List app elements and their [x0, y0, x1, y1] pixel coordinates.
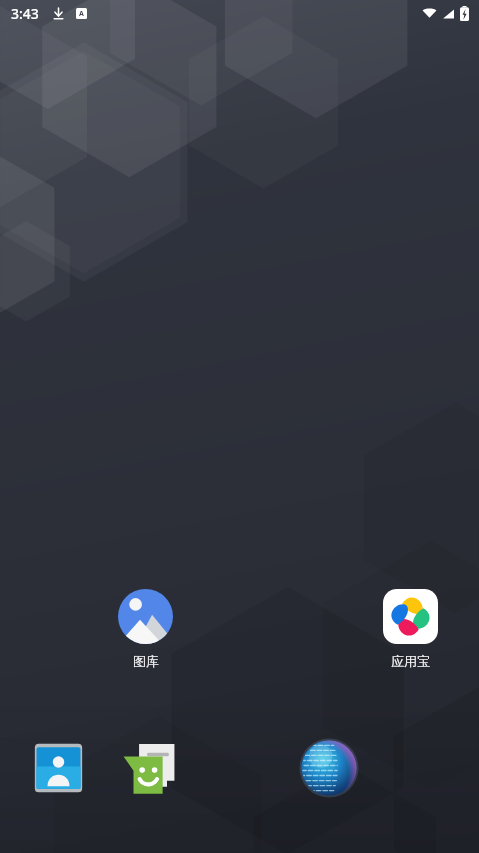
- button[interactable]: 应用宝: [379, 587, 442, 671]
- staticText: 3:43: [11, 4, 39, 23]
- button[interactable]: 图库: [114, 587, 177, 671]
- staticText: 应用宝: [391, 653, 430, 669]
- button[interactable]: Contacts: [31, 740, 86, 795]
- button[interactable]: Browser: [299, 738, 359, 798]
- staticText: 图库: [133, 653, 159, 669]
- staticText: A: [79, 9, 84, 19]
- button[interactable]: Messaging: [118, 736, 180, 798]
